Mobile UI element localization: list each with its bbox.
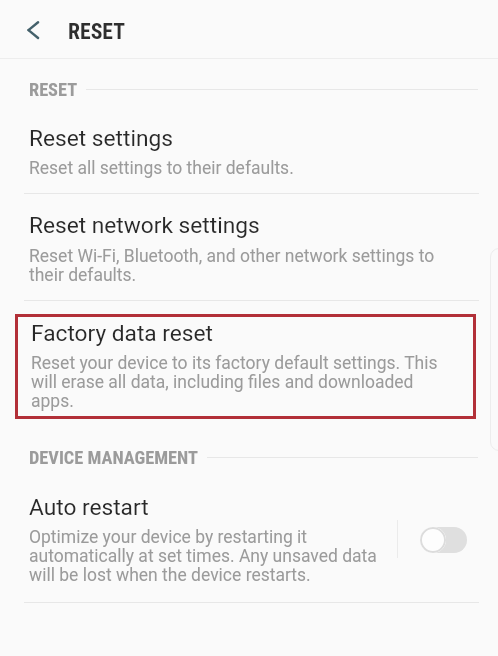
staticText: Auto restart [29,494,149,521]
staticText: RESET [29,79,78,100]
staticText: Factory data reset [31,320,213,347]
staticText: Reset all settings to their defaults. [29,158,294,179]
button[interactable]: Factory data reset [15,314,476,419]
staticText: Reset settings [29,125,173,152]
staticText: DEVICE MANAGEMENT [29,447,198,468]
staticText: Optimize your device by restarting it au… [29,527,387,586]
staticText: Reset your device to its factory default… [31,353,454,412]
staticText: Reset Wi-Fi, Bluetooth, and other networ… [29,246,446,286]
button[interactable]: Auto restart [0,494,397,586]
button[interactable]: Reset settings [0,125,498,179]
button[interactable]: Reset network settings [0,212,498,286]
button[interactable]: Auto restart toggle [413,518,473,562]
staticText: RESET [68,19,126,44]
staticText: Reset network settings [29,212,260,239]
button[interactable]: Navigate back [13,9,53,49]
